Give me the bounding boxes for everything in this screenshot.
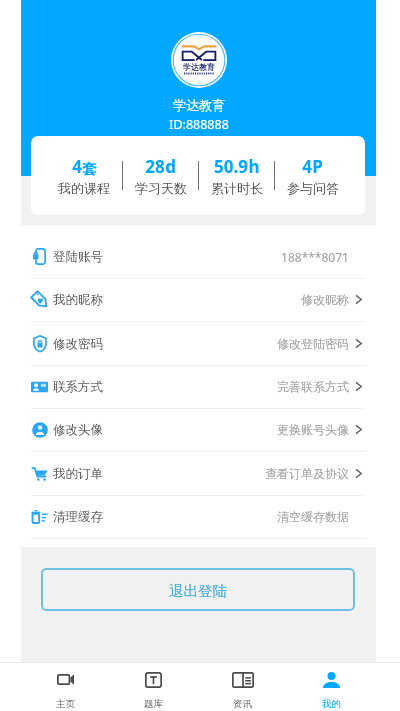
staticText: 学达教育 [173,97,225,113]
staticText: 登陆账号 [53,249,103,265]
staticText: 我的订单 [53,466,103,482]
button[interactable]: 题库 [109,662,198,711]
staticText: 修改昵称 [301,292,349,307]
staticText: P [312,155,323,178]
staticText: 188***8071 [281,249,349,265]
button[interactable]: 我的 [287,662,376,711]
staticText: 4 [72,155,82,178]
staticText: 题库 [144,698,163,710]
staticText: 清空缓存数据 [277,509,349,524]
staticText: 完善联系方式 [277,379,349,394]
button[interactable]: 我的订单 [21,452,376,496]
button[interactable]: 4 [46,136,122,215]
staticText: 清理缓存 [53,509,103,525]
button[interactable]: 修改密码 [21,322,376,366]
staticText: 更换账号头像 [277,422,349,437]
button[interactable]: 登陆账号 [21,235,376,279]
staticText: 学达教育 [183,62,215,72]
staticText: 累计时长 [211,180,263,196]
button[interactable]: 50.9 [199,136,274,215]
button[interactable]: 主页 [21,662,109,711]
staticText: ID:888888 [169,116,229,133]
button[interactable]: 资讯 [198,662,287,711]
button[interactable]: 我的昵称 [21,278,376,322]
staticText: 修改登陆密码 [277,336,349,351]
staticText: 主页 [56,698,75,710]
staticText: 50.9 [214,155,248,178]
staticText: 套 [82,160,97,178]
staticText: 4 [302,155,312,178]
staticText: 参与问答 [287,180,339,196]
staticText: 资讯 [233,698,252,710]
staticText: 退出登陆 [169,582,227,600]
staticText: 查看订单及协议 [265,466,349,481]
staticText: 联系方式 [53,379,103,395]
staticText: 我的 [322,698,341,710]
button[interactable]: 清理缓存 [21,495,376,539]
staticText: 28 [145,155,165,178]
button[interactable]: 4 [275,136,350,215]
button[interactable]: 退出登陆 [41,568,355,611]
staticText: 修改密码 [53,336,103,352]
staticText: 学习天数 [135,180,187,196]
button[interactable]: 联系方式 [21,365,376,409]
button[interactable]: 28 [123,136,198,215]
staticText: d [165,155,176,178]
button[interactable]: 修改头像 [21,408,376,452]
staticText: h [248,155,260,178]
staticText: 修改头像 [53,422,103,438]
staticText: 我的昵称 [53,292,103,308]
staticText: 我的课程 [58,180,110,196]
